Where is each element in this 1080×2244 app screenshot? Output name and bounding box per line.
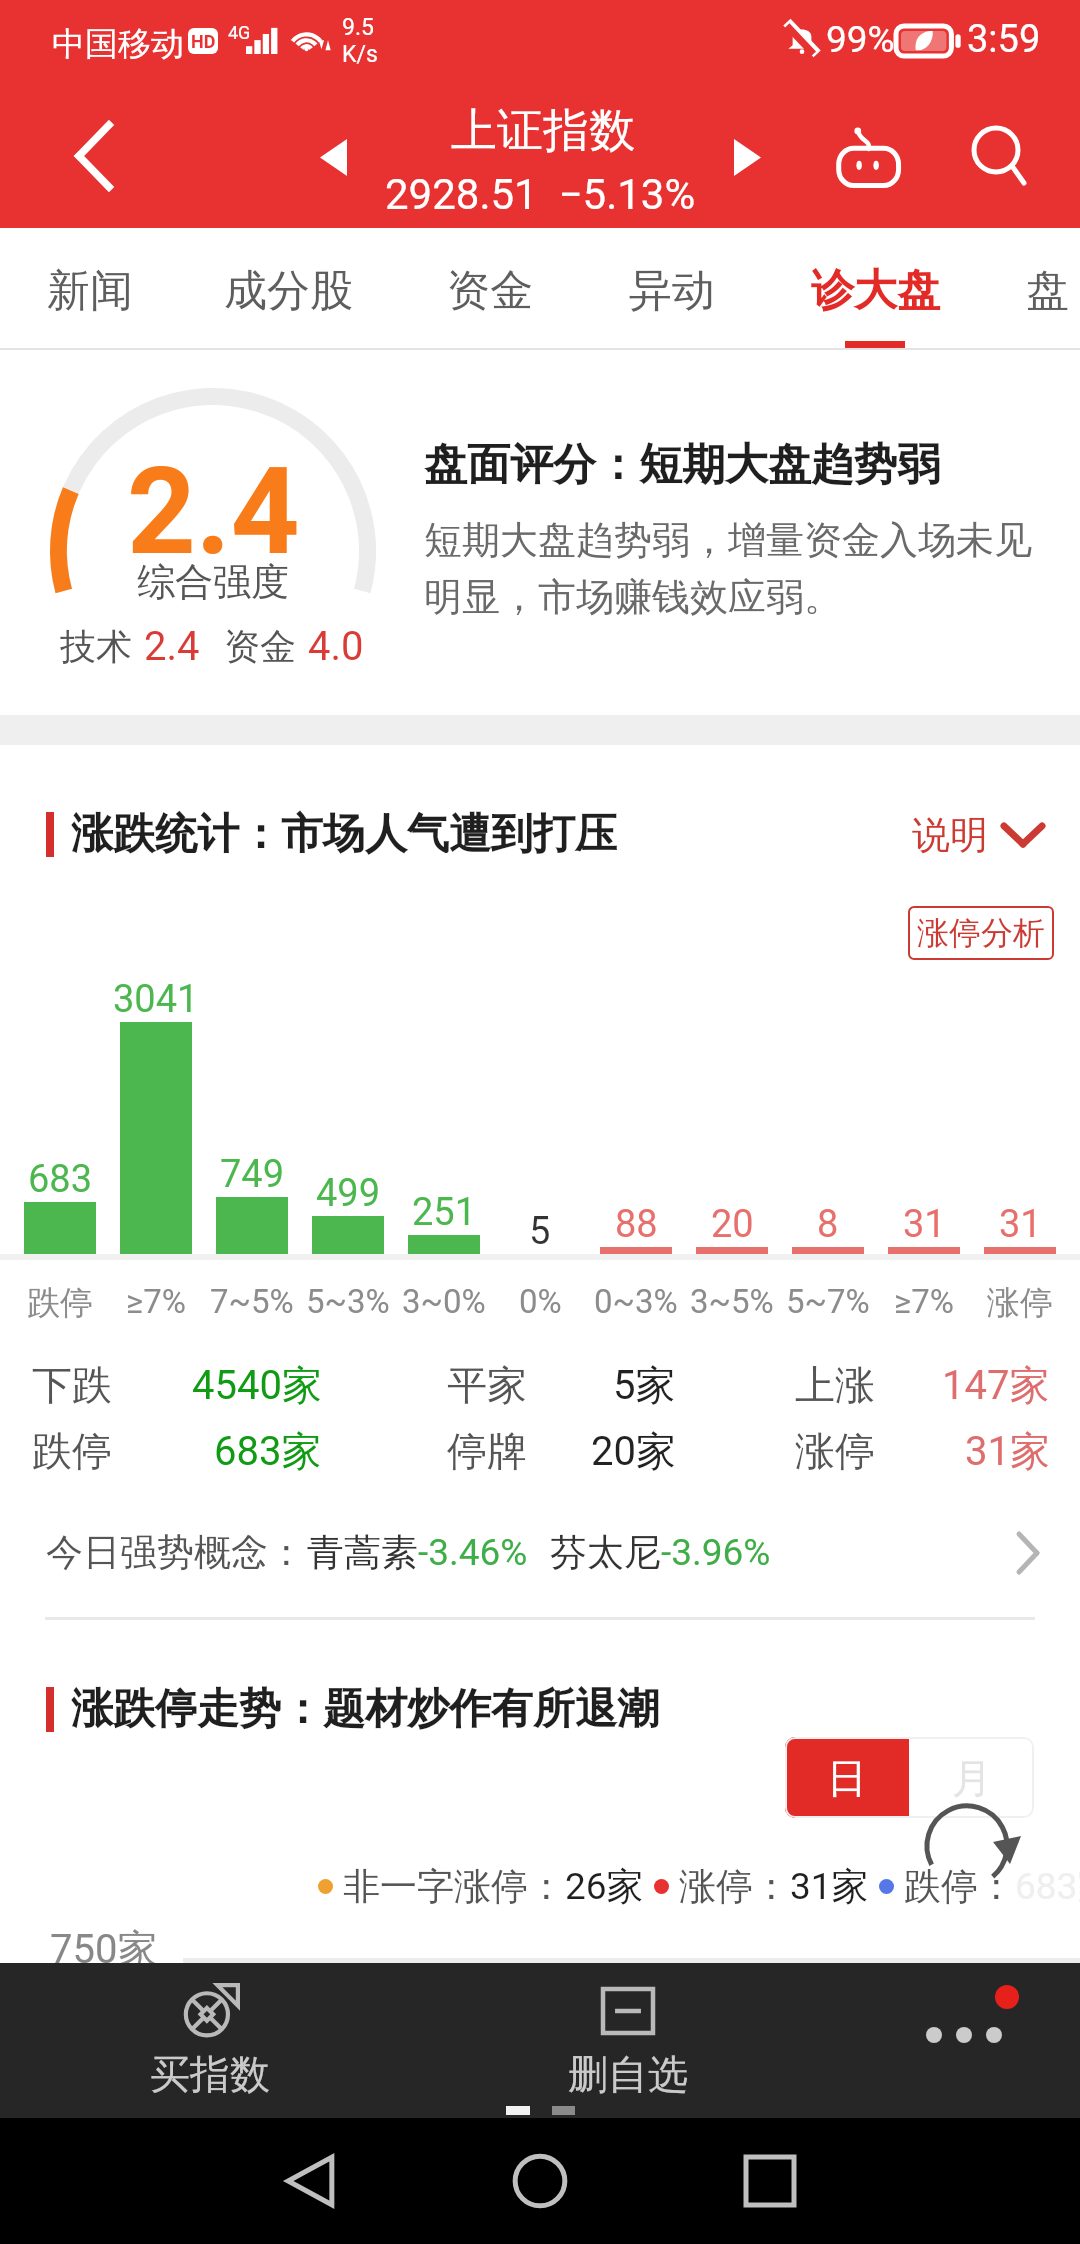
- staticText: 88: [615, 1202, 658, 1247]
- staticText: 技术: [60, 624, 132, 669]
- button[interactable]: More options: [880, 1963, 1080, 2118]
- staticText: 5~3%: [306, 1282, 390, 1321]
- button[interactable]: 诊大盘: [786, 228, 964, 350]
- staticText: 3:59: [967, 17, 1041, 62]
- button[interactable]: 新闻: [22, 228, 158, 350]
- staticText: 上证指数: [451, 102, 635, 160]
- staticText: 跌停: [27, 1282, 93, 1324]
- staticText: 涨停：: [679, 1863, 790, 1910]
- staticText: 盘: [1026, 264, 1069, 318]
- staticText: 0%: [519, 1282, 562, 1321]
- staticText: 683家: [1015, 1863, 1080, 1910]
- button[interactable]: Assistant: [812, 112, 928, 228]
- staticText: -3.46%: [418, 1531, 528, 1574]
- button[interactable]: 删自选: [528, 1963, 728, 2118]
- staticText: -3.96%: [661, 1531, 771, 1574]
- staticText: 删自选: [568, 2049, 688, 2099]
- staticText: 涨停: [795, 1426, 875, 1476]
- staticText: 青蒿素: [307, 1529, 418, 1576]
- staticText: 4540家: [192, 1360, 322, 1410]
- staticText: 中国移动: [52, 23, 184, 65]
- staticText: 成分股: [224, 264, 353, 318]
- staticText: 31: [903, 1202, 946, 1247]
- button[interactable]: 说明: [912, 811, 1046, 859]
- button[interactable]: 涨停分析: [908, 906, 1054, 960]
- staticText: 异动: [629, 264, 715, 318]
- staticText: 8: [817, 1202, 839, 1247]
- button[interactable]: Home: [480, 2118, 600, 2244]
- staticText: 31: [999, 1202, 1042, 1247]
- staticText: ≥7%: [894, 1282, 954, 1321]
- staticText: 涨跌停走势：题材炒作有所退潮: [71, 1683, 659, 1736]
- staticText: 涨停分析: [917, 913, 1045, 953]
- staticText: 4.0: [308, 623, 364, 670]
- staticText: 2.4: [127, 442, 300, 583]
- staticText: 涨跌统计：市场人气遭到打压: [71, 808, 617, 861]
- staticText: 下跌: [32, 1360, 112, 1410]
- staticText: 7~5%: [210, 1282, 294, 1321]
- staticText: 20家: [591, 1426, 676, 1476]
- staticText: 买指数: [150, 2049, 270, 2099]
- button[interactable]: 买指数: [110, 1963, 310, 2118]
- button[interactable]: 资金: [422, 228, 558, 350]
- staticText: 5~7%: [786, 1282, 870, 1321]
- button[interactable]: 异动: [604, 228, 740, 350]
- staticText: 说明: [912, 811, 988, 859]
- staticText: 99%: [826, 18, 895, 61]
- staticText: 资金: [447, 264, 533, 318]
- staticText: 683家: [214, 1426, 322, 1476]
- staticText: 750家: [50, 1924, 158, 1974]
- button[interactable]: 日: [785, 1737, 909, 1818]
- staticText: 0~3%: [594, 1282, 678, 1321]
- staticText: 9.5: [342, 14, 374, 41]
- staticText: 停牌: [447, 1426, 527, 1476]
- staticText: 147家: [942, 1360, 1050, 1410]
- button[interactable]: Search: [940, 100, 1056, 216]
- button[interactable]: 盘: [1001, 228, 1080, 350]
- staticText: 749: [220, 1152, 285, 1197]
- staticText: 跌停：: [904, 1863, 1015, 1910]
- staticText: 日: [827, 1753, 867, 1803]
- button[interactable]: 今日强势概念：: [46, 1529, 1040, 1576]
- staticText: 2.4: [144, 623, 200, 670]
- staticText: 3~5%: [690, 1282, 774, 1321]
- button[interactable]: Next index: [704, 109, 792, 197]
- staticText: 20: [711, 1202, 754, 1247]
- staticText: K/s: [342, 41, 378, 68]
- staticText: 综合强度: [137, 558, 289, 606]
- staticText: ≥7%: [126, 1282, 186, 1321]
- staticText: 今日强势概念：: [46, 1529, 305, 1576]
- staticText: 涨停: [987, 1282, 1053, 1324]
- staticText: 683: [28, 1157, 93, 1202]
- staticText: 251: [412, 1190, 477, 1235]
- staticText: 月: [952, 1753, 992, 1803]
- staticText: 2928.51 −5.13%: [385, 170, 696, 219]
- staticText: 新闻: [47, 264, 133, 318]
- staticText: 5家: [613, 1360, 676, 1410]
- staticText: 3041: [113, 977, 199, 1022]
- staticText: 31家: [790, 1863, 869, 1910]
- staticText: 31家: [965, 1426, 1050, 1476]
- staticText: 3~0%: [402, 1282, 486, 1321]
- staticText: 跌停: [32, 1426, 112, 1476]
- button[interactable]: Back: [250, 2118, 370, 2244]
- staticText: 资金: [224, 624, 296, 669]
- staticText: 上涨: [795, 1360, 875, 1410]
- staticText: 499: [316, 1171, 381, 1216]
- staticText: 平家: [447, 1360, 527, 1410]
- button[interactable]: 月: [909, 1737, 1034, 1818]
- staticText: HD: [191, 31, 216, 52]
- staticText: 4G: [228, 22, 251, 43]
- staticText: 短期大盘趋势弱，增量资金入场未见明显，市场赚钱效应弱。: [424, 516, 1046, 622]
- button[interactable]: Back: [40, 103, 150, 213]
- staticText: 5: [529, 1209, 551, 1254]
- staticText: 芬太尼: [550, 1529, 661, 1576]
- staticText: 盘面评分：短期大盘趋势弱: [424, 438, 940, 492]
- staticText: 26家: [565, 1863, 644, 1910]
- staticText: 诊大盘: [811, 264, 940, 318]
- button[interactable]: 成分股: [199, 228, 377, 350]
- button[interactable]: Recent apps: [710, 2118, 830, 2244]
- button[interactable]: Previous index: [290, 109, 378, 197]
- staticText: 非一字涨停：: [343, 1863, 565, 1910]
